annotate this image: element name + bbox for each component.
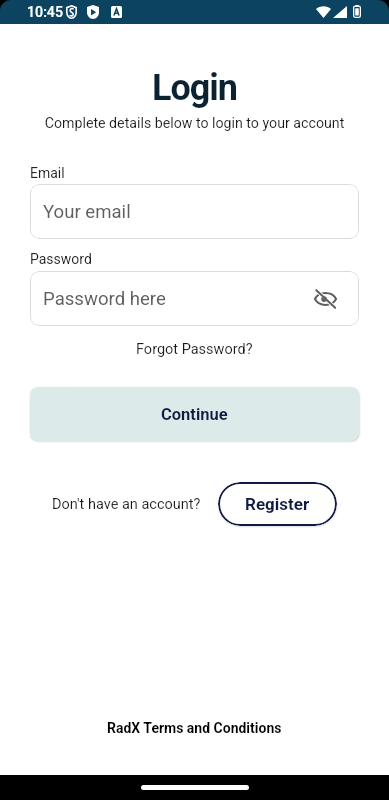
staticText: Email [30, 165, 65, 181]
staticText: Password [30, 251, 92, 267]
staticText: Login [0, 67, 389, 109]
button[interactable]: Forgot Password? [128, 338, 261, 361]
button[interactable]: Continue [30, 387, 359, 441]
button[interactable]: Password here [30, 271, 359, 326]
button[interactable]: RadX Terms and Conditions [0, 720, 389, 736]
staticText: Forgot Password? [136, 341, 253, 358]
button[interactable]: Your email [30, 184, 359, 239]
button[interactable]: Toggle password visibility [313, 287, 337, 311]
staticText: Complete details below to login to your … [0, 115, 389, 132]
staticText: RadX Terms and Conditions [107, 720, 282, 736]
staticText: Continue [161, 405, 228, 424]
staticText: Don't have an account? [52, 496, 201, 513]
button[interactable]: Register [218, 482, 337, 526]
staticText: Your email [43, 201, 131, 223]
staticText: 10:45 [27, 4, 63, 21]
staticText: Password here [43, 288, 166, 310]
staticText: Register [245, 494, 310, 514]
